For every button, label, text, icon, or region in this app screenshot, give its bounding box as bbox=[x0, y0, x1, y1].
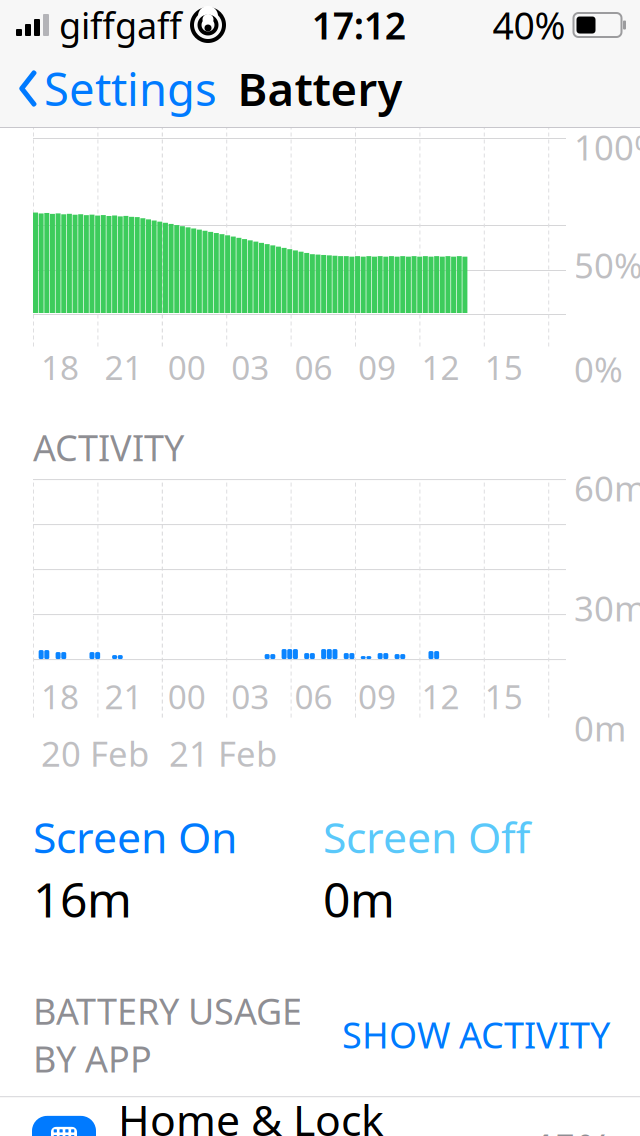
staticText: 50% bbox=[574, 242, 640, 288]
staticText: 09 bbox=[358, 674, 396, 718]
staticText: Battery bbox=[237, 58, 402, 119]
staticText: 00 bbox=[168, 674, 206, 718]
staticText: Screen On bbox=[33, 808, 237, 865]
staticText: 16m bbox=[33, 867, 132, 931]
staticText: 30m bbox=[574, 585, 640, 631]
staticText: 06 bbox=[295, 674, 333, 718]
staticText: 15 bbox=[485, 345, 523, 389]
staticText: 17:12 bbox=[312, 0, 406, 50]
staticText: 0% bbox=[574, 346, 623, 392]
button[interactable]: Home & Lock Screen bbox=[0, 1097, 640, 1136]
staticText: 100% bbox=[574, 124, 640, 170]
staticText: Settings bbox=[44, 58, 217, 119]
staticText: 0m bbox=[574, 705, 626, 751]
staticText: ACTIVITY bbox=[33, 423, 184, 471]
staticText: giffgaff bbox=[59, 1, 182, 49]
staticText: 15 bbox=[485, 674, 523, 718]
staticText: Screen Off bbox=[323, 808, 530, 865]
staticText: BATTERY USAGE BY APP bbox=[33, 987, 302, 1082]
staticText: 40% bbox=[492, 0, 565, 50]
staticText: 03 bbox=[231, 345, 269, 389]
staticText: 20 Feb bbox=[41, 730, 149, 776]
staticText: 09 bbox=[358, 345, 396, 389]
staticText: Home & Lock Screen bbox=[118, 1091, 384, 1136]
staticText: 12 bbox=[421, 345, 459, 389]
staticText: 0m bbox=[323, 867, 395, 931]
staticText: 21 bbox=[104, 345, 142, 389]
staticText: 60m bbox=[574, 465, 640, 511]
staticText: 18 bbox=[41, 674, 79, 718]
staticText: 45% bbox=[529, 1120, 612, 1136]
staticText: SHOW ACTIVITY bbox=[342, 1011, 610, 1058]
staticText: 12 bbox=[421, 674, 459, 718]
staticText: 21 Feb bbox=[169, 730, 277, 776]
staticText: 06 bbox=[295, 345, 333, 389]
staticText: 18 bbox=[41, 345, 79, 389]
button[interactable]: SHOW ACTIVITY bbox=[342, 1005, 610, 1064]
staticText: 03 bbox=[231, 674, 269, 718]
staticText: 00 bbox=[168, 345, 206, 389]
staticText: 21 bbox=[104, 674, 142, 718]
button[interactable]: Settings bbox=[0, 52, 217, 125]
